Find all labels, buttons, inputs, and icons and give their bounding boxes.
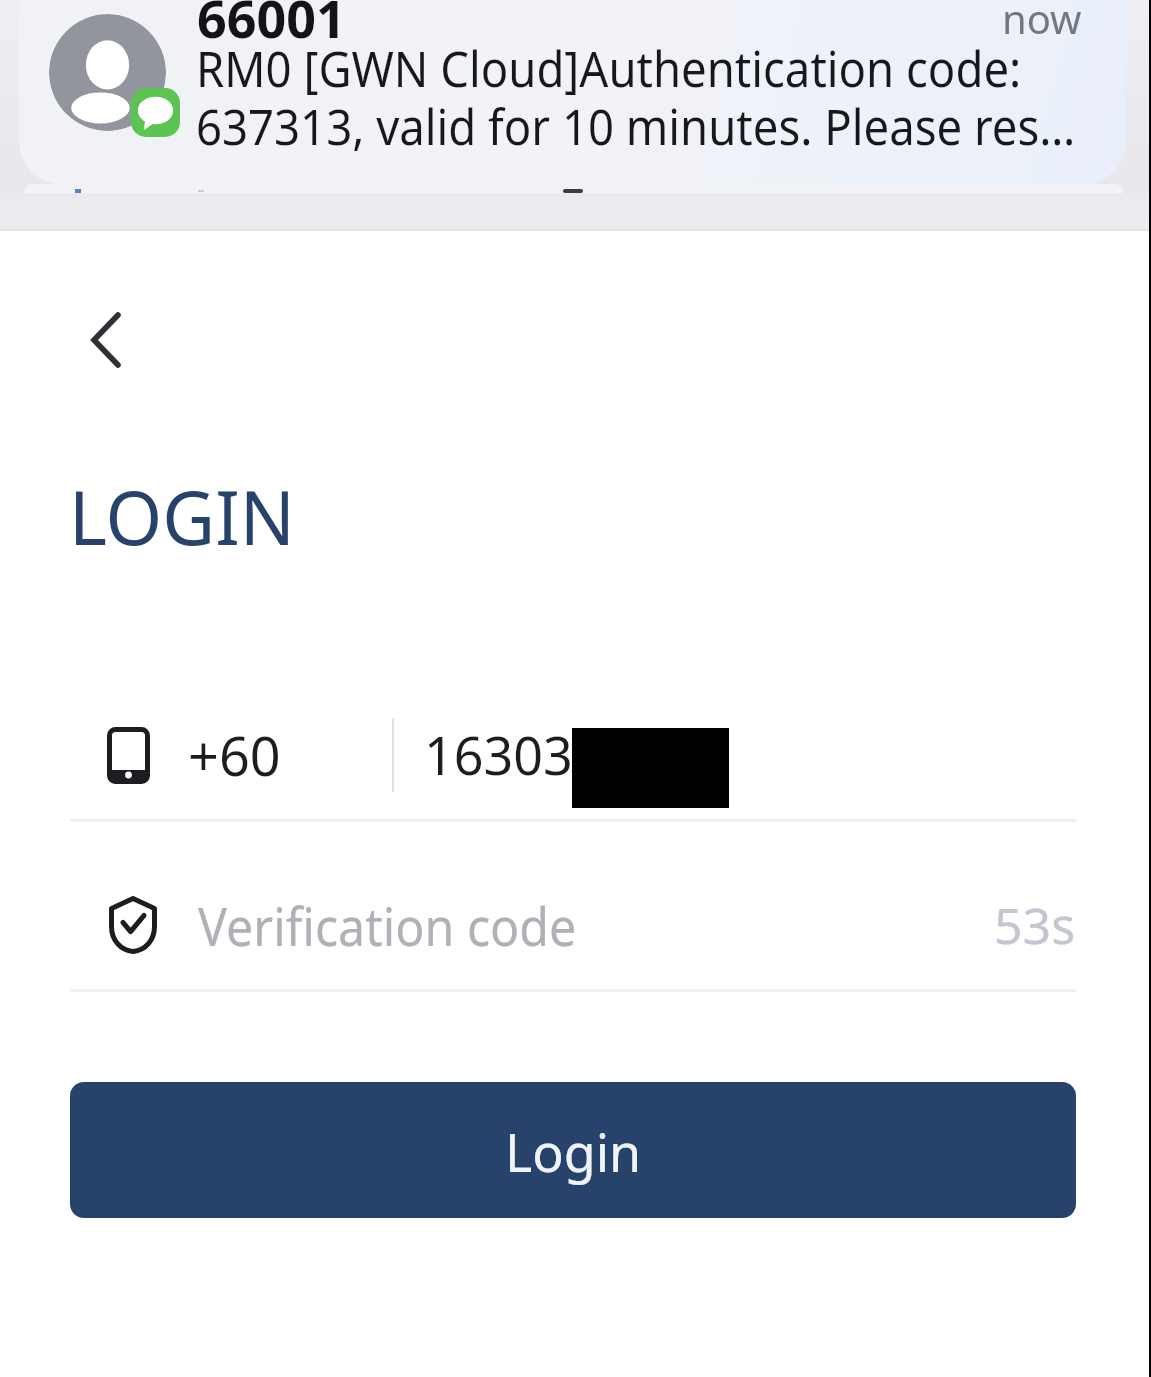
staticText: Verification code bbox=[198, 890, 576, 961]
staticText: 163031 bbox=[424, 719, 603, 790]
staticText: 66001 bbox=[197, 0, 346, 53]
button[interactable]: Login bbox=[70, 1082, 1076, 1218]
staticText: now bbox=[1002, 0, 1082, 45]
staticText: +60 bbox=[188, 718, 281, 792]
staticText: LOGIN bbox=[69, 465, 295, 567]
staticText: Login bbox=[505, 1116, 642, 1187]
button[interactable]: SMS notification from 66001 bbox=[19, 0, 1126, 185]
staticText: RM0 [GWN Cloud]Authentication code: 6373… bbox=[196, 34, 1076, 159]
button[interactable]: Verification code bbox=[70, 870, 1076, 980]
button[interactable]: +60 bbox=[70, 700, 1076, 810]
staticText: 53s bbox=[994, 891, 1076, 959]
button[interactable]: Back bbox=[57, 296, 145, 384]
